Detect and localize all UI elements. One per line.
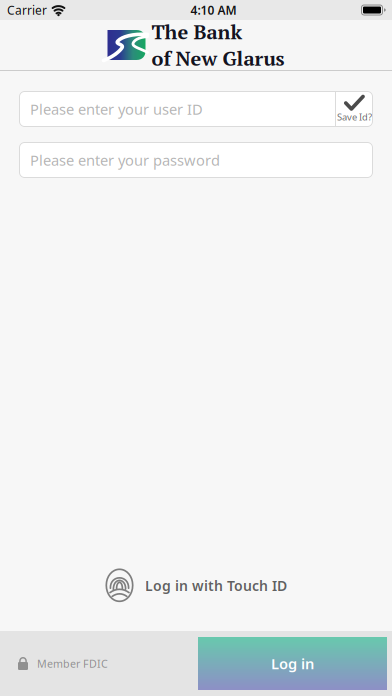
button[interactable]: Save Id? [336, 91, 373, 127]
staticText: 4:10 AM [190, 2, 236, 18]
button[interactable]: Log in with Touch ID [97, 562, 295, 609]
staticText: Please enter your user ID [30, 99, 203, 119]
staticText: Member FDIC [37, 656, 108, 671]
staticText: Please enter your password [30, 150, 220, 170]
staticText: Log in [271, 653, 314, 673]
button[interactable]: Log in [198, 637, 387, 690]
staticText: of New Glarus [151, 45, 284, 71]
button[interactable]: Member FDIC [0, 631, 198, 696]
staticText: Save Id? [337, 111, 372, 123]
staticText: Carrier [7, 2, 47, 18]
staticText: Log in with Touch ID [145, 576, 287, 595]
staticText: The Bank [151, 18, 242, 45]
